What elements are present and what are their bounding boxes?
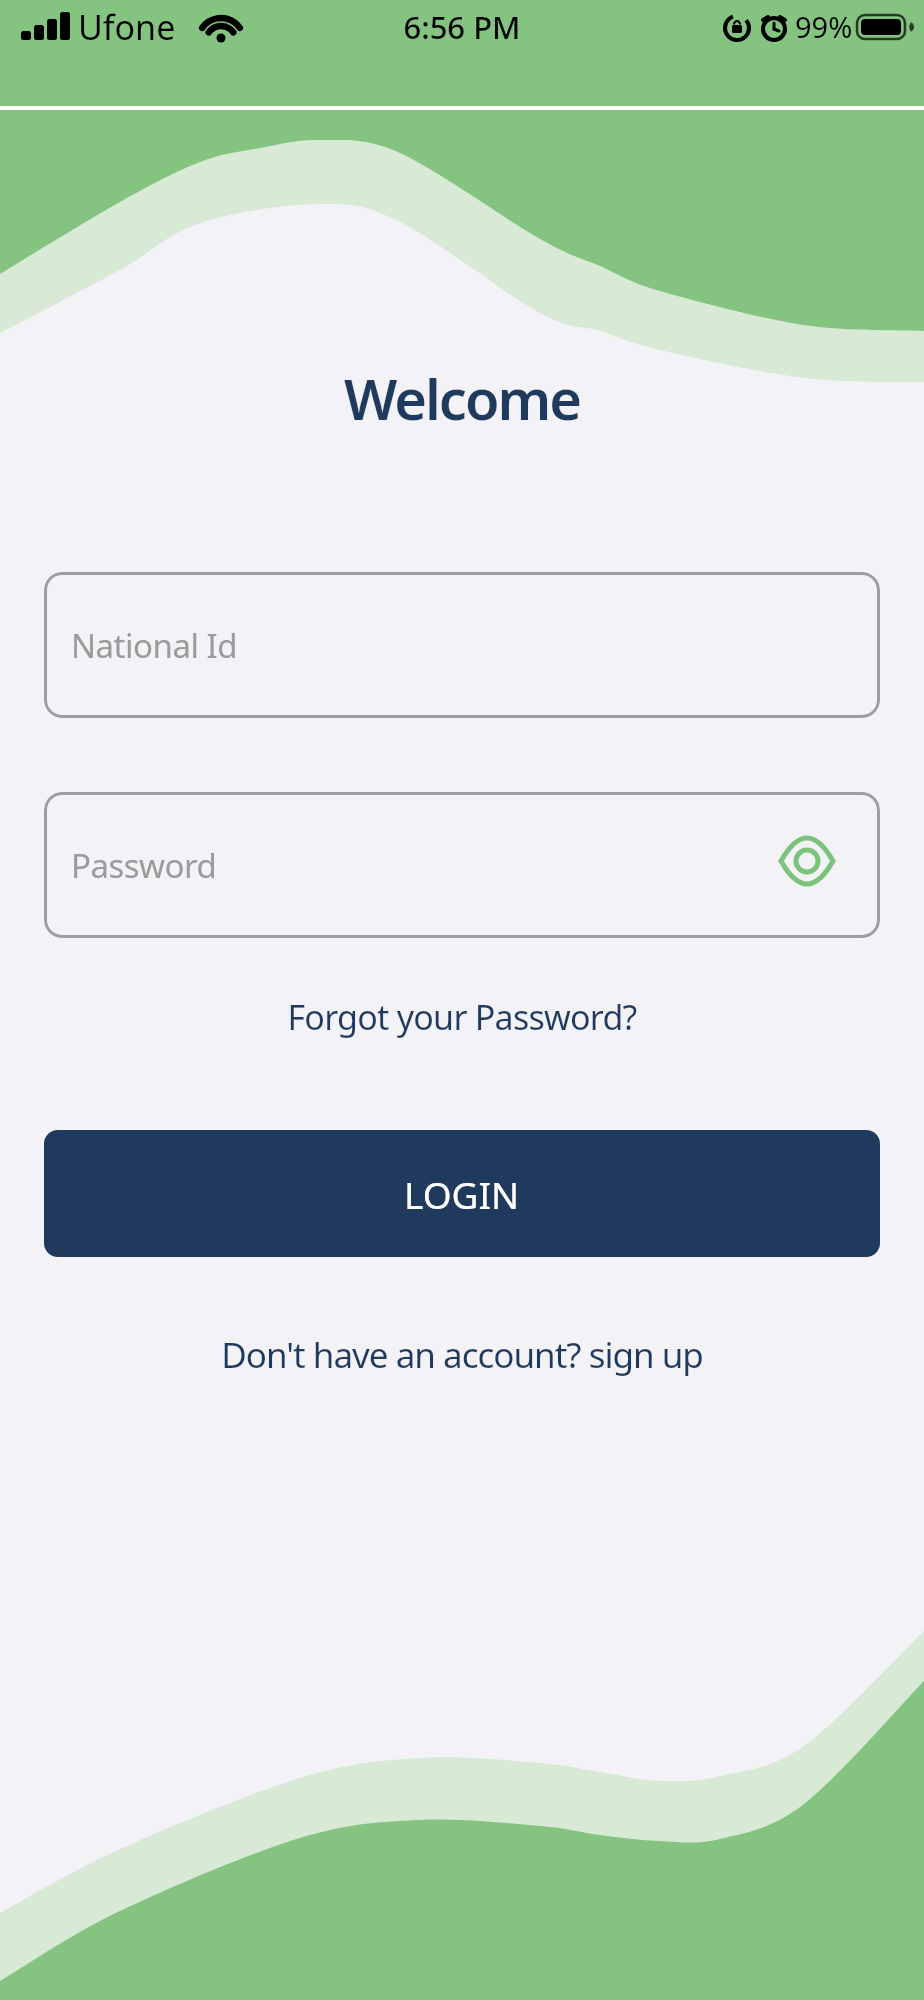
button[interactable] (767, 825, 847, 905)
button[interactable]: Don't have an account? sign up (0, 1331, 924, 1379)
button[interactable]: Password (44, 792, 880, 938)
button[interactable]: LOGIN (44, 1130, 880, 1257)
staticText: National Id (71, 623, 237, 668)
staticText: LOGIN (404, 1169, 520, 1219)
staticText: Ufone (78, 4, 176, 50)
staticText: 99% (795, 7, 853, 46)
button[interactable]: National Id (44, 572, 880, 718)
staticText: Welcome (0, 360, 924, 436)
button[interactable]: Forgot your Password? (0, 994, 924, 1040)
staticText: 6:56 PM (0, 6, 924, 48)
staticText: Password (71, 843, 217, 888)
